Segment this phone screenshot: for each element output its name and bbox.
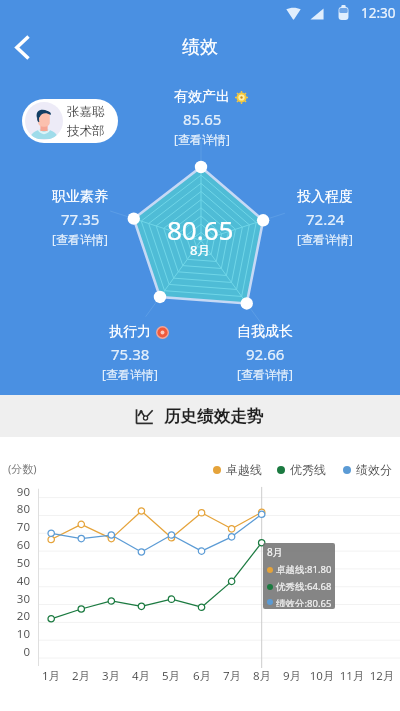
staticText: 80.65 <box>167 212 234 247</box>
staticText: 执行力 <box>109 323 151 341</box>
staticText: 5月 <box>153 668 189 684</box>
staticText: 绩效分 <box>356 462 392 477</box>
staticText: 6月 <box>184 668 220 684</box>
button[interactable]: 投入程度 <box>270 188 380 247</box>
staticText: 有效产出 <box>174 88 230 106</box>
staticText: 30 <box>0 591 30 607</box>
button[interactable]: 职业素养 <box>25 188 135 247</box>
staticText: 8月 <box>267 545 283 559</box>
staticText: 40 <box>0 573 30 589</box>
button[interactable]: Back <box>0 25 44 69</box>
staticText: 80 <box>0 501 30 517</box>
staticText: 1月 <box>33 668 69 684</box>
staticText: 8月 <box>244 668 280 684</box>
staticText: 绩效分:80.65 <box>276 597 332 607</box>
staticText: 50 <box>0 555 30 571</box>
staticText: 4月 <box>123 668 159 684</box>
staticText: 3月 <box>93 668 129 684</box>
button[interactable]: 张嘉聪 <box>22 99 118 143</box>
staticText: [查看详情] <box>297 231 353 247</box>
staticText: 92.66 <box>246 344 285 364</box>
staticText: 75.38 <box>111 344 150 364</box>
staticText: 12月 <box>364 668 400 684</box>
staticText: 投入程度 <box>297 188 353 206</box>
staticText: 绩效 <box>182 36 218 59</box>
staticText: 72.24 <box>306 209 345 229</box>
staticText: [查看详情] <box>102 366 158 382</box>
staticText: 历史绩效走势 <box>164 406 263 427</box>
button[interactable]: 优秀线 <box>277 462 326 477</box>
button[interactable]: 卓越线 <box>213 462 262 477</box>
button[interactable]: 绩效分 <box>343 462 392 477</box>
staticText: 优秀线:64.68 <box>276 580 332 593</box>
button[interactable]: 自我成长 <box>210 323 320 382</box>
staticText: 卓越线:81.80 <box>276 563 332 576</box>
staticText: 张嘉聪 <box>67 104 105 120</box>
staticText: 10 <box>0 626 30 642</box>
staticText: 技术部 <box>67 123 105 139</box>
staticText: 85.65 <box>183 109 222 129</box>
staticText: (分数) <box>8 461 37 476</box>
staticText: 7月 <box>214 668 250 684</box>
staticText: 90 <box>0 484 30 500</box>
staticText: 卓越线 <box>226 462 262 477</box>
staticText: [查看详情] <box>174 131 230 147</box>
staticText: 70 <box>0 519 30 535</box>
staticText: 8月 <box>190 241 211 259</box>
staticText: 0 <box>0 644 30 660</box>
staticText: 自我成长 <box>237 323 293 341</box>
staticText: 优秀线 <box>290 462 326 477</box>
staticText: 12:30 <box>361 4 396 22</box>
staticText: [查看详情] <box>237 366 293 382</box>
staticText: 77.35 <box>61 209 100 229</box>
staticText: 60 <box>0 537 30 553</box>
staticText: 10月 <box>304 668 340 684</box>
button[interactable]: 有效产出 <box>147 88 257 147</box>
staticText: 11月 <box>334 668 370 684</box>
staticText: 职业素养 <box>52 188 108 206</box>
staticText: 2月 <box>63 668 99 684</box>
staticText: [查看详情] <box>52 231 108 247</box>
button[interactable]: 执行力 <box>75 323 185 382</box>
staticText: 20 <box>0 608 30 624</box>
staticText: 9月 <box>274 668 310 684</box>
